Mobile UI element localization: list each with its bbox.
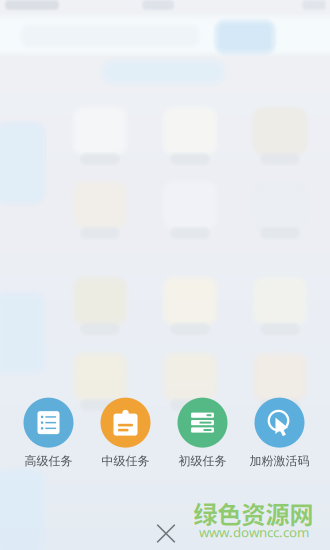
staticText: www.downcc.com [199,523,309,541]
staticText: 初级任务 [178,454,226,468]
staticText: 绿色资源网 [193,496,313,530]
staticText: 高级任务 [24,454,72,468]
button[interactable]: 加粉激活码 [241,398,317,468]
staticText: 中级任务 [101,454,149,468]
button[interactable]: 高级任务 [10,398,86,468]
button[interactable]: 中级任务 [87,398,163,468]
button[interactable]: Close [145,512,187,550]
button[interactable]: 初级任务 [164,398,240,468]
staticText: 加粉激活码 [249,454,309,468]
